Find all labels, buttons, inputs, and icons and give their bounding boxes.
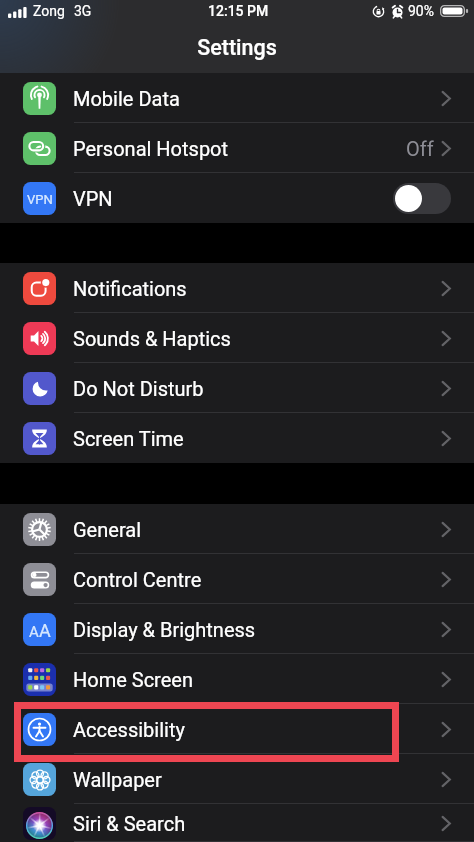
button[interactable]: Siri & Search: [0, 804, 474, 842]
staticText: A: [29, 623, 39, 641]
staticText: A: [39, 620, 51, 641]
staticText: 3G: [74, 3, 92, 19]
staticText: Off: [406, 137, 434, 160]
button[interactable]: Wallpaper: [0, 754, 474, 804]
staticText: Personal Hotspot: [73, 137, 229, 160]
button[interactable]: A: [0, 604, 474, 654]
button[interactable]: Sounds & Haptics: [0, 313, 474, 363]
staticText: VPN: [27, 192, 53, 207]
staticText: 12:15 PM: [208, 3, 269, 19]
button[interactable]: General: [0, 504, 474, 554]
button[interactable]: Screen Time: [0, 413, 474, 463]
staticText: Control Centre: [73, 568, 202, 591]
staticText: Settings: [197, 35, 277, 60]
button[interactable]: Home Screen: [0, 654, 474, 704]
staticText: Sounds & Haptics: [73, 327, 231, 350]
staticText: Screen Time: [73, 427, 184, 450]
staticText: Accessibility: [73, 718, 185, 741]
staticText: 90%: [408, 3, 434, 19]
staticText: Notifications: [73, 277, 187, 300]
staticText: Home Screen: [73, 668, 193, 691]
staticText: Do Not Disturb: [73, 377, 204, 400]
staticText: Display & Brightness: [73, 618, 256, 641]
staticText: Wallpaper: [73, 768, 162, 791]
button[interactable]: Control Centre: [0, 554, 474, 604]
button[interactable]: VPN: [0, 173, 474, 223]
staticText: General: [73, 518, 142, 541]
button[interactable]: Accessibility: [0, 704, 474, 754]
staticText: Zong: [33, 3, 65, 19]
button[interactable]: VPN toggle: [393, 183, 451, 214]
staticText: Mobile Data: [73, 87, 180, 110]
button[interactable]: Mobile Data: [0, 73, 474, 123]
button[interactable]: Notifications: [0, 263, 474, 313]
button[interactable]: Do Not Disturb: [0, 363, 474, 413]
staticText: VPN: [73, 187, 113, 210]
staticText: Siri & Search: [73, 812, 186, 835]
button[interactable]: Personal Hotspot: [0, 123, 474, 173]
